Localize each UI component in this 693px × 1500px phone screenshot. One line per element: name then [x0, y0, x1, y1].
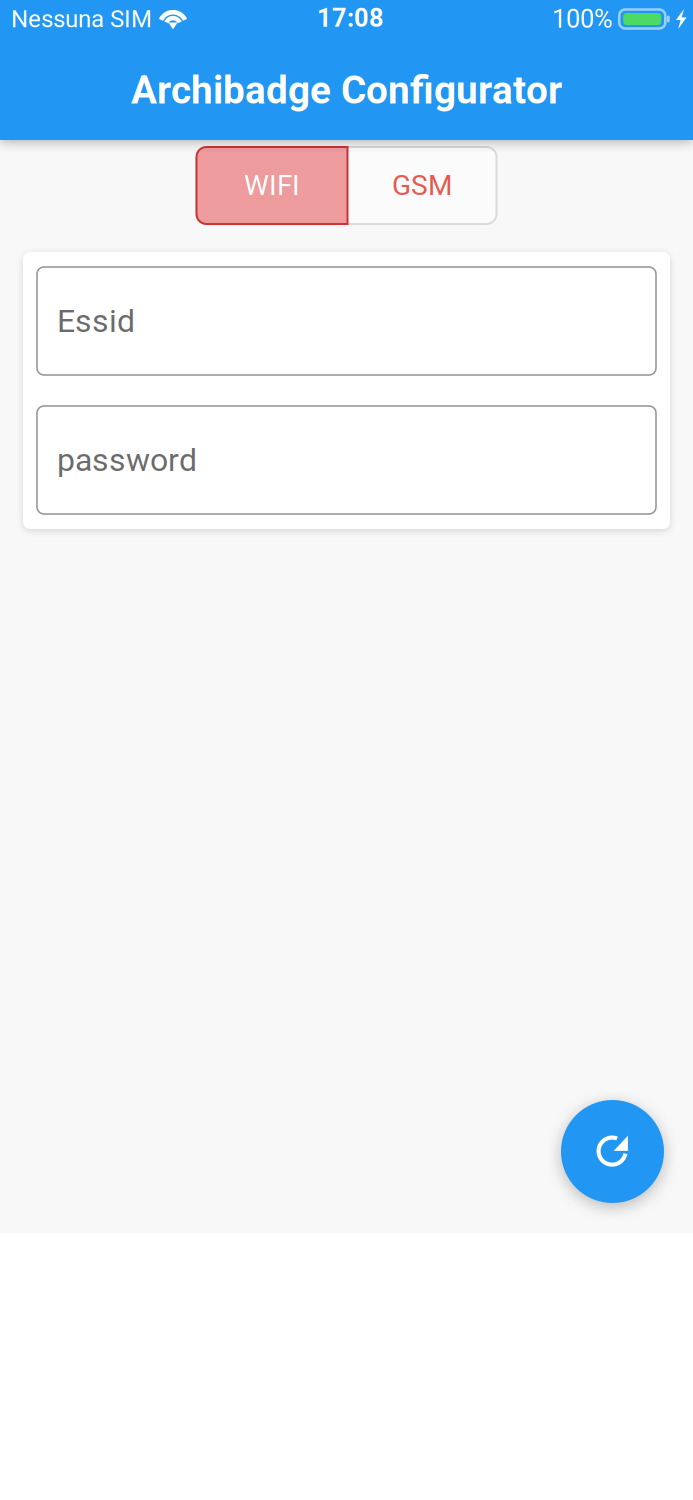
button[interactable]: Refresh	[561, 1100, 664, 1203]
staticText: Archibadge Configurator	[131, 68, 562, 113]
button[interactable]: password	[37, 406, 656, 514]
button[interactable]: GSM	[347, 147, 496, 224]
staticText: GSM	[392, 169, 452, 202]
staticText: Essid	[57, 302, 135, 340]
staticText: Nessuna SIM	[11, 5, 152, 33]
staticText: password	[57, 441, 197, 479]
staticText: WIFI	[244, 169, 300, 202]
staticText: 17:08	[317, 3, 384, 33]
button[interactable]: Essid	[37, 267, 656, 375]
staticText: 100%	[552, 4, 613, 34]
button[interactable]: WIFI	[196, 147, 347, 224]
